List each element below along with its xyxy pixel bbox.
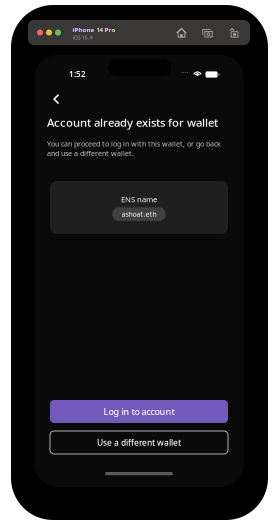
- staticText: You can proceed to log in with this wall…: [47, 139, 221, 158]
- button[interactable]: Back: [45, 87, 66, 111]
- staticText: iOS 16.4: [72, 34, 92, 41]
- staticText: ashoat.eth: [121, 209, 156, 219]
- staticText: iPhone 14 Pro: [72, 26, 115, 34]
- button[interactable]: Rotate device: [226, 25, 241, 40]
- button[interactable]: Screenshot: [200, 25, 215, 40]
- button[interactable]: Use a different wallet: [50, 431, 228, 454]
- button[interactable]: Home: [174, 25, 189, 40]
- staticText: 1:52: [69, 68, 86, 79]
- button[interactable]: Log in to account: [50, 400, 228, 423]
- staticText: Log in to account: [103, 406, 174, 417]
- staticText: Account already exists for wallet: [47, 115, 218, 130]
- staticText: Use a different wallet: [97, 437, 181, 448]
- staticText: ENS name: [121, 194, 157, 204]
